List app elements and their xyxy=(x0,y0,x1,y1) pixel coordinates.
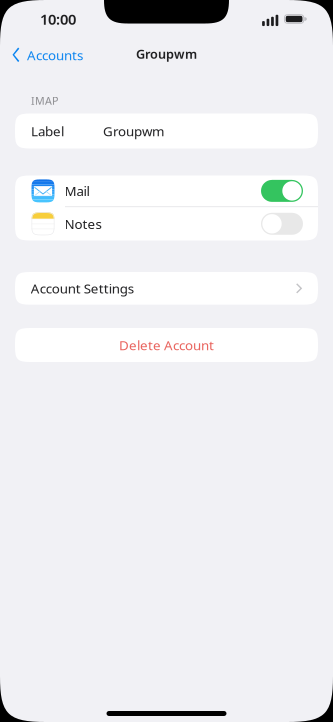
staticText: Label xyxy=(31,122,64,140)
button[interactable]: Account Settings xyxy=(15,272,318,305)
button[interactable]: Mail xyxy=(15,175,318,206)
staticText: Mail xyxy=(64,182,89,200)
staticText: 10:00 xyxy=(40,9,76,29)
staticText: IMAP xyxy=(31,93,58,108)
button[interactable]: Delete Account xyxy=(15,328,318,362)
button[interactable]: Notes xyxy=(15,207,318,240)
staticText: Notes xyxy=(64,215,101,233)
staticText: Groupwm xyxy=(103,122,164,140)
button[interactable]: Accounts xyxy=(0,42,83,68)
staticText: Delete Account xyxy=(119,336,214,354)
staticText: Account Settings xyxy=(31,279,134,297)
staticText: Accounts xyxy=(27,46,83,64)
staticText: Groupwm xyxy=(136,45,197,62)
